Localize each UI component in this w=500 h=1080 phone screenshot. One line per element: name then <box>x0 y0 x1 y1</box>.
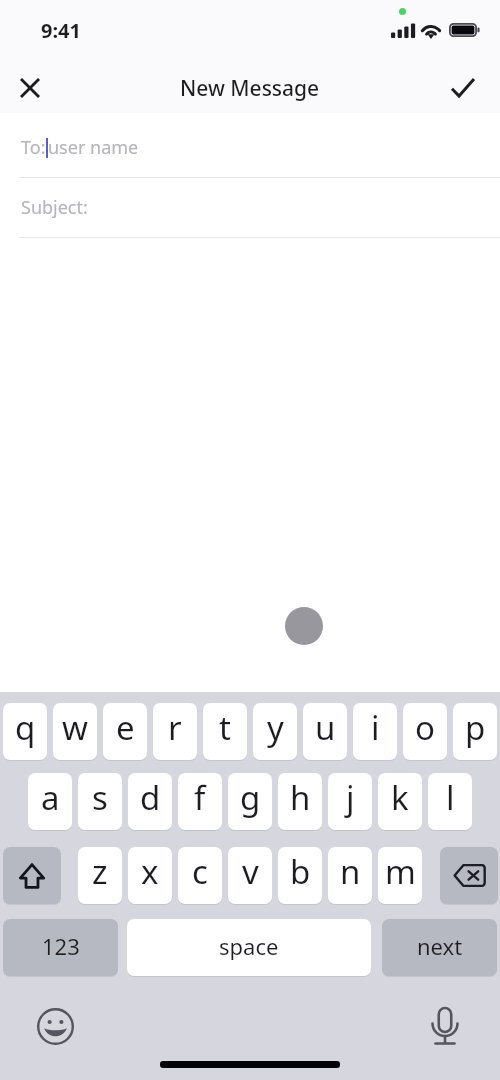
staticText: o <box>415 705 435 750</box>
button[interactable]: a <box>28 773 72 830</box>
button[interactable]: h <box>278 773 322 830</box>
button[interactable]: 123 <box>3 919 118 976</box>
staticText: To: <box>21 135 46 160</box>
button[interactable]: m <box>378 847 422 904</box>
staticText: f <box>194 775 206 820</box>
button[interactable]: next <box>382 919 497 976</box>
staticText: j <box>346 775 355 820</box>
button[interactable]: v <box>228 847 272 904</box>
button[interactable]: x <box>128 847 172 904</box>
button[interactable]: Send <box>437 61 489 113</box>
button[interactable]: l <box>428 773 472 830</box>
staticText: s <box>92 775 108 820</box>
staticText: g <box>240 775 261 820</box>
button[interactable]: f <box>178 773 222 830</box>
staticText: i <box>371 705 380 750</box>
staticText: c <box>192 849 208 894</box>
staticText: m <box>385 849 416 894</box>
button[interactable]: Backspace <box>440 847 498 904</box>
button[interactable]: d <box>128 773 172 830</box>
staticText: w <box>62 705 88 750</box>
staticText: t <box>219 705 231 750</box>
staticText: space <box>219 931 279 961</box>
button[interactable]: Close <box>4 62 56 114</box>
button[interactable]: p <box>453 703 497 760</box>
button[interactable]: e <box>103 703 147 760</box>
button[interactable]: g <box>228 773 272 830</box>
staticText: n <box>340 849 361 894</box>
staticText: d <box>140 775 161 820</box>
staticText: next <box>417 931 463 961</box>
staticText: z <box>92 849 108 894</box>
staticText: u <box>315 705 336 750</box>
button[interactable]: b <box>278 847 322 904</box>
staticText: y <box>267 705 284 750</box>
button[interactable]: j <box>328 773 372 830</box>
staticText: 9:41 <box>41 17 81 44</box>
button[interactable]: y <box>253 703 297 760</box>
button[interactable]: c <box>178 847 222 904</box>
staticText: Subject: <box>21 195 88 220</box>
button[interactable]: w <box>53 703 97 760</box>
staticText: x <box>141 849 159 894</box>
button[interactable]: u <box>303 703 347 760</box>
button[interactable]: o <box>403 703 447 760</box>
button[interactable]: Emoji <box>31 1002 79 1050</box>
button[interactable]: i <box>353 703 397 760</box>
button[interactable]: Dictation <box>421 1004 469 1052</box>
staticText: r <box>168 705 182 750</box>
button[interactable]: r <box>153 703 197 760</box>
staticText: q <box>15 705 36 750</box>
staticText: b <box>290 849 311 894</box>
button[interactable]: Shift <box>3 847 61 904</box>
staticText: v <box>242 849 259 894</box>
staticText: 123 <box>42 931 80 961</box>
staticText: user name <box>48 135 139 160</box>
button[interactable]: q <box>3 703 47 760</box>
staticText: a <box>41 775 60 820</box>
button[interactable]: Avatar <box>285 607 323 645</box>
button[interactable]: n <box>328 847 372 904</box>
staticText: New Message <box>180 74 320 103</box>
button[interactable]: t <box>203 703 247 760</box>
button[interactable]: z <box>78 847 122 904</box>
staticText: l <box>446 775 455 820</box>
staticText: k <box>391 775 409 820</box>
staticText: p <box>465 705 486 750</box>
staticText: e <box>116 705 135 750</box>
button[interactable]: s <box>78 773 122 830</box>
button[interactable]: space <box>127 919 371 976</box>
staticText: h <box>290 775 311 820</box>
button[interactable]: k <box>378 773 422 830</box>
